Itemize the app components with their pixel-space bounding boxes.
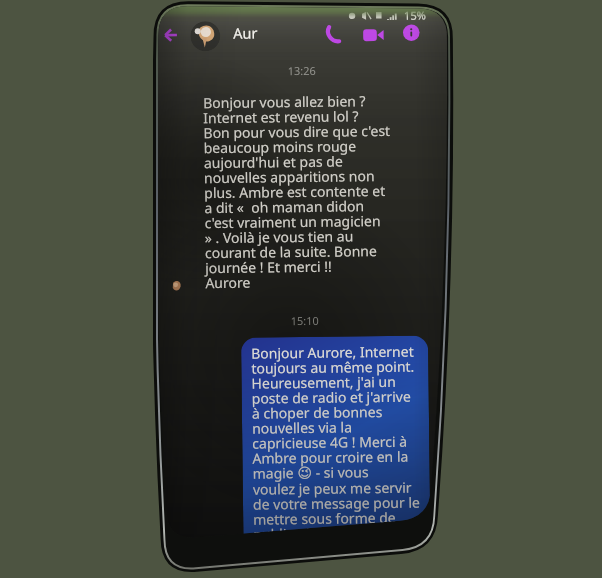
staticText: Bonjour Aurore, Internet toujours au mêm… [251, 342, 421, 559]
button[interactable]: Call [324, 24, 343, 44]
staticText: Bonjour vous allez bien ? Internet est r… [203, 91, 392, 292]
staticText: 15% [404, 7, 426, 21]
button[interactable]: Video call [362, 24, 384, 46]
button[interactable]: Info [402, 24, 420, 42]
button[interactable]: Back [162, 26, 179, 44]
staticText: 13:26 [158, 61, 447, 80]
staticText: 15:10 [160, 311, 448, 330]
staticText: Aur [233, 22, 258, 43]
